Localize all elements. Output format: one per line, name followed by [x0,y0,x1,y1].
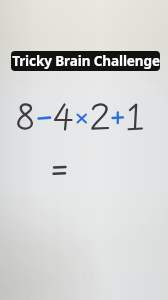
staticText: Tricky Brain Challenge [12,52,160,70]
button[interactable]: Tricky Brain Challenge [11,51,160,71]
other: Equation eight minus four times two plus… [0,0,168,300]
